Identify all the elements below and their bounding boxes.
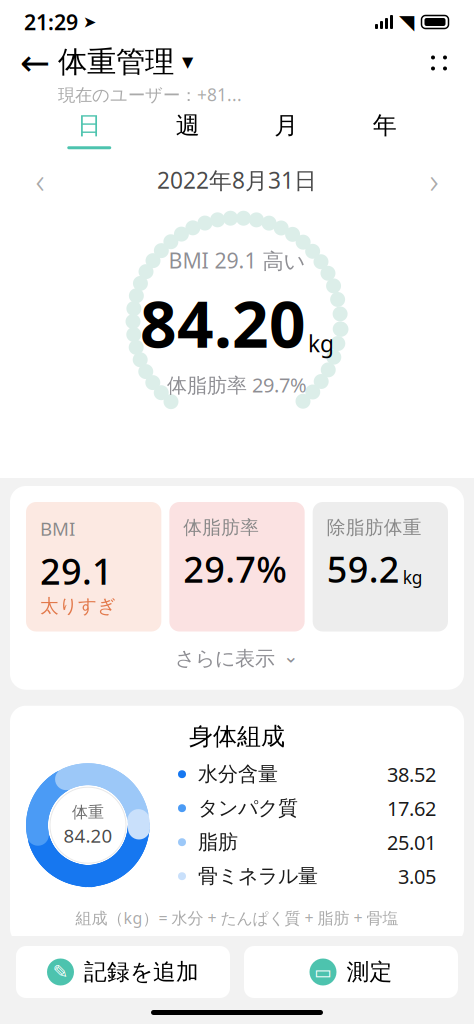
staticText: 21:29 xyxy=(24,8,78,36)
staticText: 月 xyxy=(274,111,298,140)
staticText: 骨ミネラル量 xyxy=(198,864,318,888)
staticText: 29.7% xyxy=(183,545,287,593)
button[interactable]: 月 xyxy=(237,105,335,155)
staticText: 体重 xyxy=(72,802,104,822)
button[interactable]: BMI xyxy=(26,502,161,631)
staticText: kg xyxy=(403,566,423,589)
staticText: 組成（kg）= 水分 + たんぱく質 + 脂肪 + 骨塩 xyxy=(75,907,398,928)
staticText: 脂肪 xyxy=(198,830,238,854)
staticText: ➤ xyxy=(83,13,96,31)
staticText: 身体組成 xyxy=(189,722,285,751)
button[interactable]: さらに表示 xyxy=(10,631,464,686)
button[interactable]: 戻る xyxy=(12,40,58,86)
staticText: 38.52 xyxy=(387,761,436,787)
staticText: 体脂肪率 29.7% xyxy=(167,371,307,398)
staticText: kg xyxy=(308,328,334,358)
button[interactable]: ▭ xyxy=(244,946,458,998)
staticText: 84.20 xyxy=(63,823,112,848)
staticText: ✎ xyxy=(52,961,68,983)
staticText: › xyxy=(429,157,438,203)
staticText: 水分含量 xyxy=(198,762,278,786)
staticText: BMI 29.1 高い xyxy=(168,246,305,274)
button[interactable]: 次の日 xyxy=(412,160,456,200)
staticText: 日 xyxy=(77,111,101,140)
staticText: 週 xyxy=(176,111,200,140)
staticText: 3.05 xyxy=(398,863,436,889)
button[interactable]: 除脂肪体重 xyxy=(313,502,448,631)
button[interactable]: 前の日 xyxy=(18,160,62,200)
staticText: タンパク質 xyxy=(198,796,298,820)
staticText: 体脂肪率 xyxy=(183,516,259,539)
staticText: さらに表示 xyxy=(175,646,275,671)
staticText: 除脂肪体重 xyxy=(327,516,422,539)
staticText: ▭ xyxy=(314,961,332,983)
staticText: ‹ xyxy=(35,157,44,203)
button[interactable]: 体重管理 xyxy=(58,44,193,80)
staticText: 測定 xyxy=(346,958,392,986)
staticText: ▼ xyxy=(182,54,193,70)
staticText: 29.1 xyxy=(40,547,113,595)
staticText: 体重管理 xyxy=(58,44,174,80)
staticText: 84.20 xyxy=(140,280,306,365)
staticText: BMI xyxy=(40,516,75,541)
staticText: 2022年8月31日 xyxy=(157,165,317,195)
staticText: 17.62 xyxy=(387,795,436,821)
staticText: 25.01 xyxy=(387,829,436,855)
staticText: 年 xyxy=(373,111,397,140)
button[interactable]: 年 xyxy=(335,105,434,155)
button[interactable]: 日 xyxy=(40,105,138,155)
staticText: ⌄ xyxy=(283,645,299,667)
staticText: 太りすぎ xyxy=(40,595,116,617)
staticText: 59.2 xyxy=(327,545,400,593)
staticText: 記録を追加 xyxy=(84,958,199,986)
button[interactable]: 週 xyxy=(138,105,237,155)
button[interactable]: 体脂肪率 xyxy=(169,502,305,631)
staticText: ← xyxy=(20,42,50,83)
button[interactable]: その他のオプション xyxy=(416,40,462,86)
button[interactable]: ✎ xyxy=(16,946,230,998)
staticText: ◥ xyxy=(399,11,414,33)
staticText: 現在のユーザー：+81... xyxy=(58,83,242,106)
